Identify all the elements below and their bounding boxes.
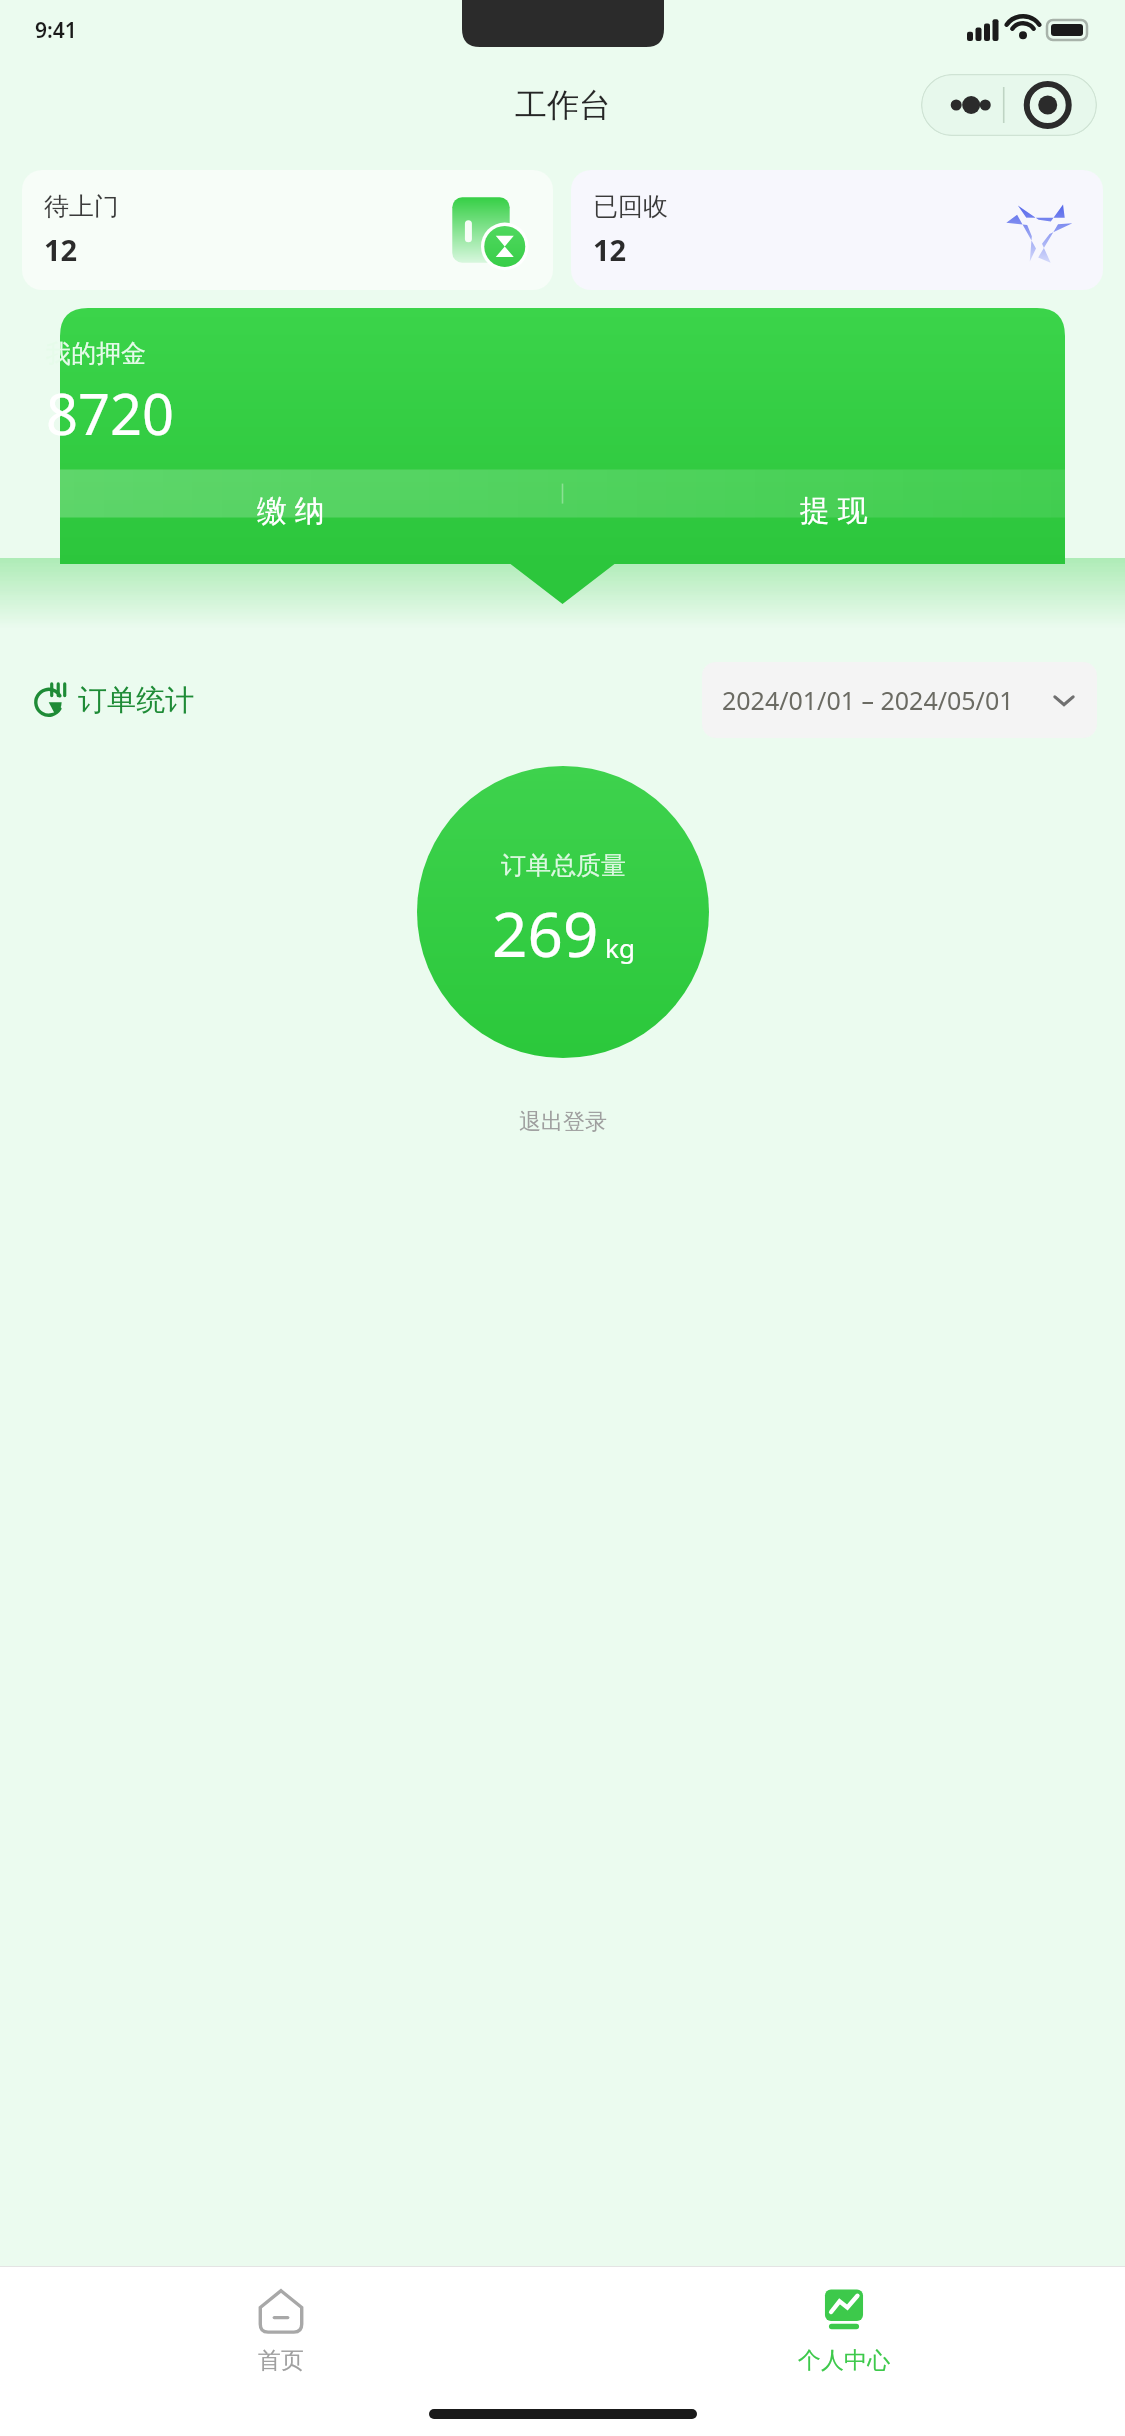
staticText: 8720 bbox=[46, 375, 175, 451]
staticText: 订单总质量 bbox=[501, 850, 626, 881]
staticText: 已回收 bbox=[593, 191, 668, 222]
staticText: 工作台 bbox=[515, 85, 611, 125]
staticText: 提 现 bbox=[800, 489, 868, 530]
staticText: 我的押金 bbox=[46, 338, 146, 369]
staticText: 269 bbox=[492, 891, 599, 975]
staticText: kg bbox=[605, 930, 635, 965]
staticText: 个人中心 bbox=[798, 2346, 890, 2375]
staticText: 退出登录 bbox=[519, 1108, 607, 1136]
staticText: 缴 纳 bbox=[257, 489, 325, 530]
staticText: 12 bbox=[44, 230, 78, 269]
button[interactable]: 订单总质量 bbox=[417, 766, 709, 1058]
button[interactable]: 首页 bbox=[0, 2267, 562, 2392]
button[interactable]: Menu and capsule actions bbox=[921, 74, 1097, 136]
button[interactable]: 缴 纳 bbox=[20, 470, 562, 548]
staticText: 首页 bbox=[258, 2346, 304, 2375]
staticText: 9:41 bbox=[35, 16, 77, 45]
button[interactable]: 个人中心 bbox=[562, 2267, 1125, 2392]
button[interactable]: 待上门 bbox=[22, 170, 553, 290]
staticText: 2024/01/01 – 2024/05/01 bbox=[722, 683, 1014, 717]
button[interactable]: 2024/01/01 – 2024/05/01 bbox=[702, 662, 1097, 738]
staticText: 待上门 bbox=[44, 191, 119, 222]
staticText: 12 bbox=[593, 230, 627, 269]
button[interactable]: 已回收 bbox=[571, 170, 1103, 290]
staticText: 订单统计 bbox=[78, 682, 194, 719]
button[interactable]: 退出登录 bbox=[479, 1098, 647, 1146]
button[interactable]: 提 现 bbox=[562, 470, 1105, 548]
